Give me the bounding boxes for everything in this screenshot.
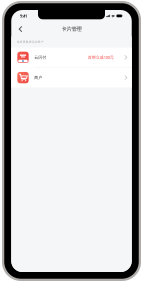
button[interactable]: 云闪付	[11, 47, 132, 67]
staticText: 云闪付	[34, 55, 46, 60]
staticText: 9:41	[20, 13, 27, 18]
staticText: 首绑立减100元	[88, 55, 114, 60]
staticText: 商户	[34, 75, 42, 80]
staticText: 卡片管理	[61, 26, 81, 32]
button[interactable]: Back	[14, 23, 26, 36]
staticText: 选择需要绑定的商户	[17, 40, 44, 44]
button[interactable]: 商户	[11, 68, 132, 87]
